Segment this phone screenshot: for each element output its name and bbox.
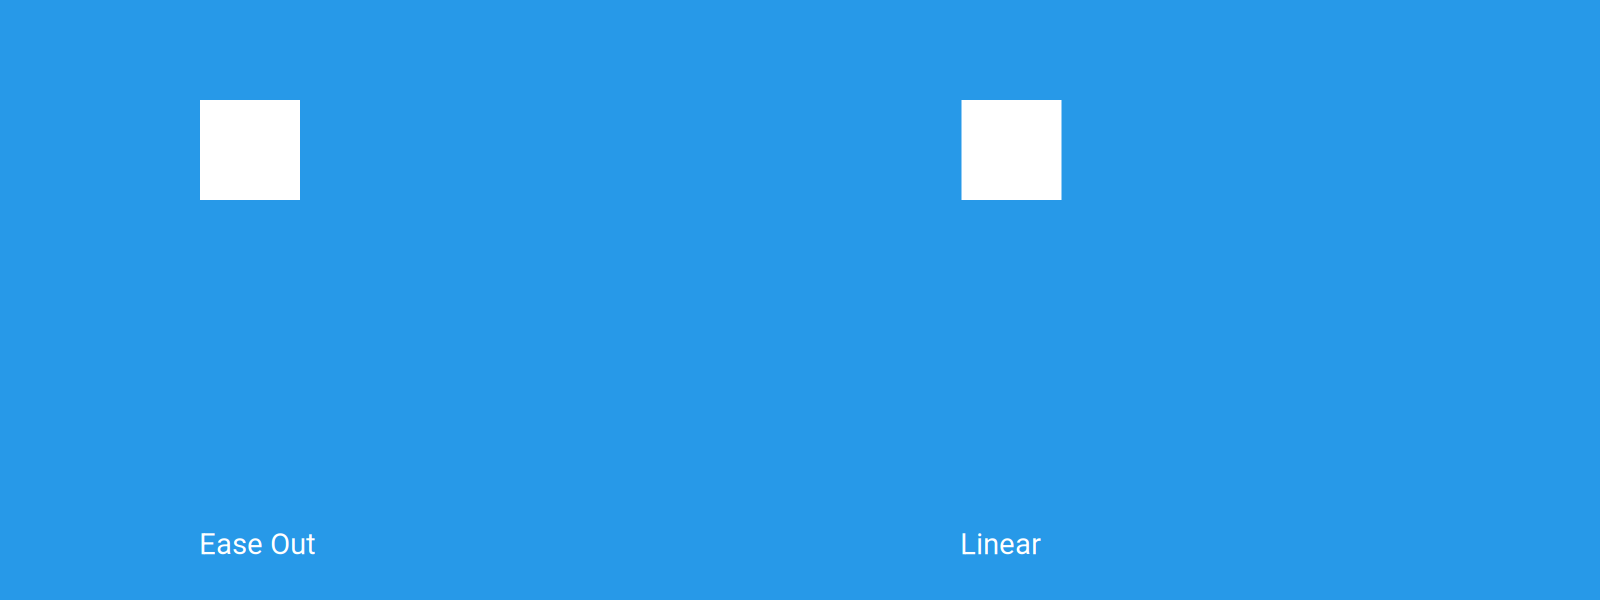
staticText: Linear xyxy=(960,527,1041,561)
staticText: Ease Out xyxy=(199,527,316,561)
